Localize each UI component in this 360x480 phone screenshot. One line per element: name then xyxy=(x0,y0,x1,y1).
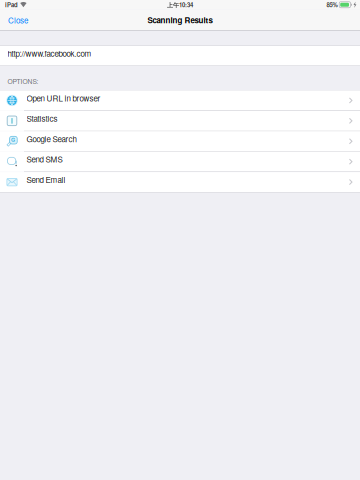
button[interactable]: Send SMS xyxy=(0,152,360,172)
staticText: 85% xyxy=(327,0,338,9)
button[interactable]: Send Email xyxy=(0,172,360,192)
button[interactable]: Statistics xyxy=(0,111,360,131)
button[interactable]: Close xyxy=(0,9,36,31)
staticText: 上午10:34 xyxy=(167,0,193,9)
staticText: OPTIONS: xyxy=(7,76,38,86)
staticText: Send SMS xyxy=(26,153,62,165)
staticText: Close xyxy=(8,14,28,26)
staticText: Send Email xyxy=(26,174,65,185)
staticText: Open URL in browser xyxy=(26,92,100,104)
staticText: G xyxy=(11,136,15,143)
staticText: Statistics xyxy=(26,113,57,124)
staticText: Scanning Results xyxy=(147,14,212,26)
staticText: Google Search xyxy=(26,133,76,144)
button[interactable]: G xyxy=(0,131,360,151)
button[interactable]: Open URL in browser xyxy=(0,90,360,110)
staticText: http://www.facebook.com xyxy=(7,47,91,59)
staticText: iPad xyxy=(5,0,18,9)
